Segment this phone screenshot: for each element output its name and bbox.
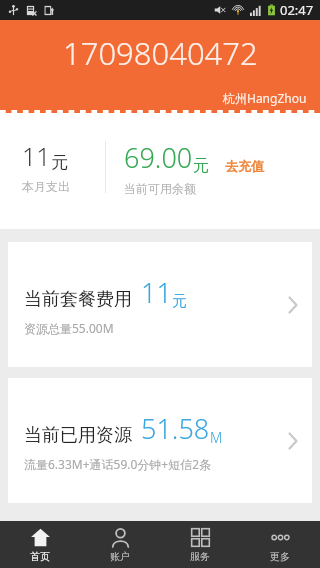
staticText: 元	[193, 156, 209, 176]
button[interactable]: 当前已用资源	[8, 378, 312, 503]
button[interactable]: 账户	[80, 521, 160, 568]
staticText: 流量6.33M+通话59.0分钟+短信2条	[24, 456, 212, 472]
staticText: 首页	[30, 550, 50, 563]
button[interactable]: 当前套餐费用	[8, 242, 312, 367]
button[interactable]: 服务	[160, 521, 240, 568]
staticText: 去充值	[225, 158, 264, 174]
staticText: 当前套餐费用	[24, 288, 132, 311]
staticText: 账户	[110, 550, 130, 563]
staticText: 本月支出	[22, 179, 70, 194]
button[interactable]: 首页	[0, 521, 80, 568]
button[interactable]: 去充值	[223, 156, 266, 176]
staticText: 当前已用资源	[24, 424, 132, 447]
staticText: 51.58	[141, 410, 210, 447]
staticText: M	[210, 428, 223, 447]
button[interactable]: 更多	[240, 521, 320, 568]
staticText: 11	[22, 139, 51, 173]
staticText: 元	[172, 292, 187, 311]
staticText: 杭州HangZhou	[223, 90, 307, 106]
staticText: 更多	[270, 550, 290, 563]
staticText: 11	[141, 274, 172, 311]
staticText: 元	[51, 152, 68, 173]
staticText: 69.00	[124, 139, 193, 176]
staticText: 当前可用余额	[124, 181, 196, 196]
staticText: 17098040472	[63, 32, 258, 74]
staticText: 02:47	[280, 1, 314, 19]
staticText: 资源总量55.00M	[24, 320, 114, 336]
staticText: 服务	[190, 550, 210, 563]
